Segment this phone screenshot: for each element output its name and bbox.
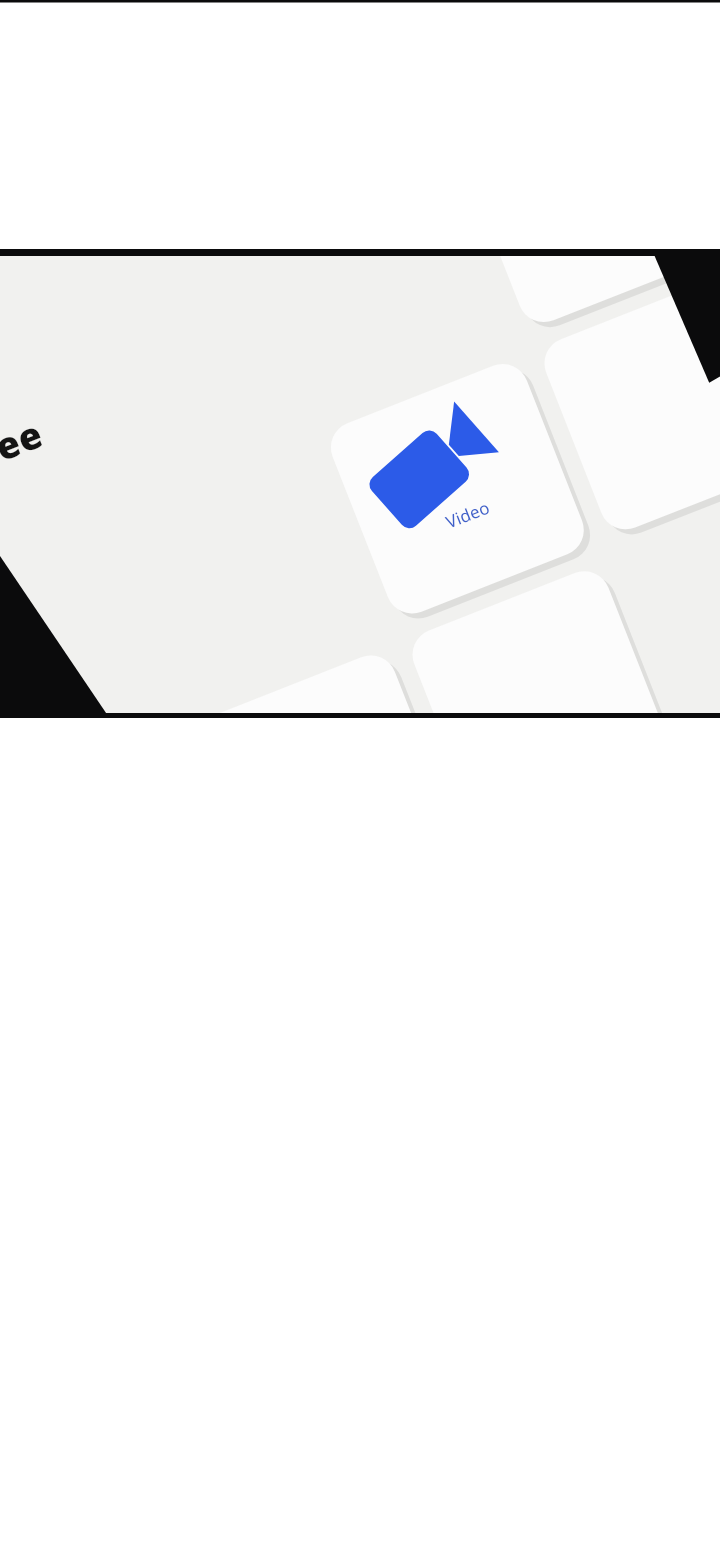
button[interactable]: Contact card photo [0, 0, 720, 1554]
